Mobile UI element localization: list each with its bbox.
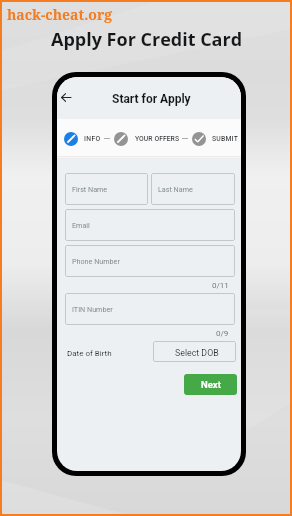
staticText: hack-cheat.org bbox=[7, 5, 113, 24]
staticText: Date of Birth bbox=[67, 349, 112, 358]
staticText: INFO bbox=[84, 135, 101, 143]
staticText: Email bbox=[72, 221, 90, 229]
staticText: 0/9 bbox=[216, 329, 229, 338]
staticText: SUBMIT bbox=[212, 135, 238, 143]
staticText: ITIN Number bbox=[72, 305, 113, 313]
button[interactable]: Next bbox=[184, 374, 237, 395]
staticText: 0/11 bbox=[212, 281, 229, 290]
button[interactable]: Phone Number bbox=[65, 245, 235, 277]
button[interactable]: Last Name bbox=[151, 173, 235, 205]
button[interactable]: ITIN Number bbox=[65, 293, 235, 325]
staticText: YOUR OFFERS bbox=[135, 135, 180, 143]
button[interactable]: Email bbox=[65, 209, 235, 241]
staticText: Apply For Credit Card bbox=[51, 27, 243, 52]
staticText: Phone Number bbox=[72, 257, 120, 265]
button[interactable]: Back bbox=[57, 87, 76, 107]
button[interactable]: Select DOB bbox=[153, 341, 236, 362]
staticText: Next bbox=[201, 379, 221, 390]
staticText: Select DOB bbox=[175, 348, 219, 358]
staticText: Last Name bbox=[158, 185, 193, 193]
button[interactable]: First Name bbox=[65, 173, 148, 205]
staticText: Start for Apply bbox=[112, 92, 191, 106]
staticText: First Name bbox=[72, 185, 108, 193]
